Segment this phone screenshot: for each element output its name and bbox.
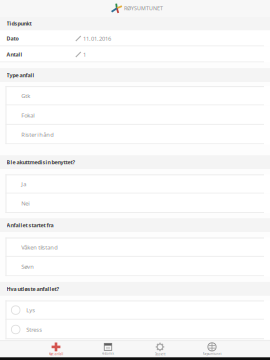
staticText: 11.01.2016 bbox=[83, 35, 111, 42]
staticText: Ja bbox=[21, 180, 26, 188]
button[interactable]: Ja bbox=[5, 174, 270, 194]
button[interactable]: Oppsett bbox=[134, 341, 186, 357]
button[interactable]: Nytt anfall bbox=[30, 341, 82, 357]
staticText: Rister i hånd bbox=[21, 131, 54, 138]
staticText: Anfallet startet fra bbox=[6, 222, 53, 229]
button[interactable]: Røysumtunet bbox=[186, 341, 238, 357]
button[interactable]: Våken tilstand bbox=[5, 237, 270, 257]
staticText: RØYSUMTUNET bbox=[124, 5, 163, 12]
staticText: Hva utløste anfallet? bbox=[6, 285, 59, 292]
button[interactable]: Fokal bbox=[5, 105, 270, 125]
button[interactable]: Søvn bbox=[5, 257, 270, 276]
staticText: Nytt anfall bbox=[48, 352, 63, 356]
staticText: Type anfall bbox=[6, 72, 34, 79]
staticText: Nei bbox=[21, 199, 29, 207]
button[interactable]: Stress bbox=[5, 320, 270, 339]
button[interactable]: Dato bbox=[0, 30, 270, 46]
button[interactable]: Gtk bbox=[5, 86, 270, 105]
button[interactable]: Lys bbox=[5, 300, 270, 320]
staticText: Røysumtunet bbox=[202, 352, 221, 356]
staticText: Ble akuttmedisin benyttet? bbox=[6, 159, 75, 166]
staticText: Tidspunkt bbox=[6, 20, 31, 27]
staticText: Fokal bbox=[21, 111, 34, 119]
staticText: Antall bbox=[6, 51, 22, 58]
staticText: Stress bbox=[26, 326, 42, 333]
staticText: Historikk bbox=[101, 352, 114, 356]
staticText: 1 bbox=[83, 51, 86, 58]
staticText: Dato bbox=[6, 35, 18, 42]
staticText: Søvn bbox=[21, 263, 34, 270]
button[interactable]: Nei bbox=[5, 194, 270, 213]
staticText: Gtk bbox=[21, 92, 30, 100]
button[interactable]: Historikk bbox=[82, 341, 134, 357]
staticText: Oppsett bbox=[154, 352, 165, 356]
staticText: Lys bbox=[26, 306, 35, 314]
staticText: Våken tilstand bbox=[21, 243, 58, 251]
button[interactable]: Rister i hånd bbox=[5, 125, 270, 144]
button[interactable]: Antall bbox=[0, 46, 270, 62]
